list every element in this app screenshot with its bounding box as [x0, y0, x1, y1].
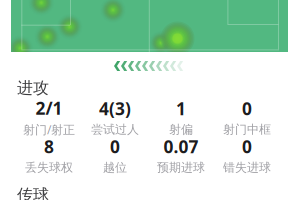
button[interactable]: 2/1	[16, 101, 82, 133]
button[interactable]: 0	[214, 139, 280, 171]
button[interactable]: 0	[82, 139, 148, 171]
staticText: 丢失球权	[25, 160, 73, 175]
staticText: 射偏	[169, 122, 193, 137]
staticText: 8	[44, 135, 54, 158]
button[interactable]: 0	[214, 101, 280, 133]
staticText: 尝试过人	[91, 122, 139, 137]
button[interactable]: 1	[148, 101, 214, 133]
button[interactable]: 8	[16, 139, 82, 171]
staticText: 2/1	[35, 96, 62, 119]
staticText: 0	[242, 97, 252, 120]
staticText: 0.07	[163, 135, 198, 158]
staticText: 进攻	[17, 78, 49, 98]
staticText: 越位	[103, 160, 127, 175]
staticText: 0	[110, 135, 120, 158]
staticText: 1	[176, 97, 186, 120]
button[interactable]: 4(3)	[82, 101, 148, 133]
staticText: 4(3)	[99, 97, 131, 120]
staticText: 预期进球	[157, 160, 205, 175]
staticText: 射门中框	[223, 122, 271, 137]
staticText: 传球	[17, 185, 49, 200]
staticText: 错失进球	[223, 160, 271, 175]
button[interactable]: 0.07	[148, 139, 214, 171]
staticText: 射门/射正	[23, 121, 75, 137]
staticText: 0	[242, 135, 252, 158]
